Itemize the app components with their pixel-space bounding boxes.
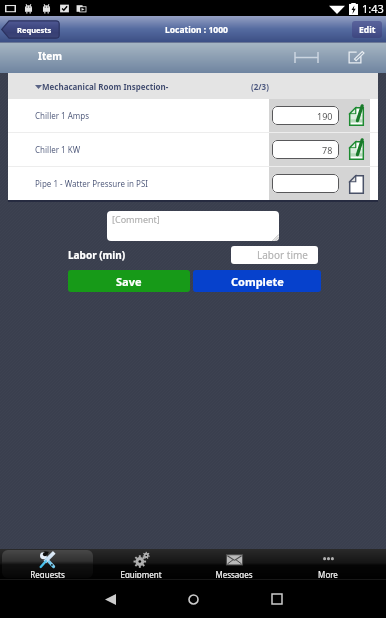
button[interactable]: More bbox=[282, 550, 374, 578]
button[interactable]: Resize width bbox=[290, 44, 323, 70]
staticText: Item bbox=[38, 49, 62, 63]
staticText: Equipment bbox=[120, 569, 162, 578]
button[interactable]: Labor time bbox=[231, 246, 318, 264]
staticText: 190 bbox=[317, 110, 333, 122]
staticText: Save bbox=[116, 274, 142, 289]
button[interactable]: Recent apps bbox=[260, 582, 294, 616]
staticText: Chiller 1 KW bbox=[35, 144, 269, 155]
button[interactable]: Complete bbox=[193, 270, 321, 292]
staticText: Labor (min) bbox=[68, 248, 126, 262]
button[interactable]: Pipe 1 - Watter Pressure in PSI bbox=[8, 167, 378, 200]
staticText: 78 bbox=[322, 144, 333, 156]
button[interactable]: Note bbox=[343, 101, 370, 131]
button[interactable]: 78 bbox=[272, 140, 339, 159]
staticText: 1:43 bbox=[362, 1, 384, 16]
button[interactable]: Note bbox=[343, 169, 370, 199]
button[interactable] bbox=[272, 174, 339, 193]
button[interactable]: Edit bbox=[352, 21, 382, 38]
button[interactable]: Equipment bbox=[95, 550, 186, 578]
button[interactable]: [Comment] bbox=[107, 211, 279, 241]
button[interactable]: Mechacanical Room Inspection- bbox=[8, 73, 378, 99]
staticText: Location : 1000 bbox=[165, 24, 228, 36]
button[interactable]: Save bbox=[68, 270, 190, 292]
staticText: Mechacanical Room Inspection- bbox=[42, 81, 169, 92]
button[interactable]: Chiller 1 KW bbox=[8, 133, 378, 166]
staticText: (2/3) bbox=[251, 81, 269, 92]
button[interactable]: Back bbox=[93, 582, 127, 616]
staticText: [Comment] bbox=[112, 213, 160, 225]
button[interactable]: Messages bbox=[188, 550, 280, 578]
button[interactable]: 190 bbox=[272, 106, 339, 125]
button[interactable]: Home bbox=[176, 582, 210, 616]
button[interactable]: Edit item bbox=[341, 44, 369, 70]
staticText: Complete bbox=[231, 274, 284, 289]
staticText: Labor time bbox=[257, 248, 308, 262]
staticText: Chiller 1 Amps bbox=[35, 110, 269, 121]
button[interactable]: Note bbox=[343, 135, 370, 165]
button[interactable]: Requests bbox=[1, 20, 60, 39]
staticText: Requests bbox=[30, 569, 65, 578]
button[interactable]: Requests bbox=[2, 550, 93, 578]
staticText: More bbox=[318, 569, 338, 578]
staticText: Pipe 1 - Watter Pressure in PSI bbox=[35, 178, 269, 189]
button[interactable]: Chiller 1 Amps bbox=[8, 99, 378, 132]
staticText: Requests bbox=[17, 25, 52, 35]
staticText: Messages bbox=[215, 569, 253, 578]
staticText: Edit bbox=[359, 24, 376, 36]
